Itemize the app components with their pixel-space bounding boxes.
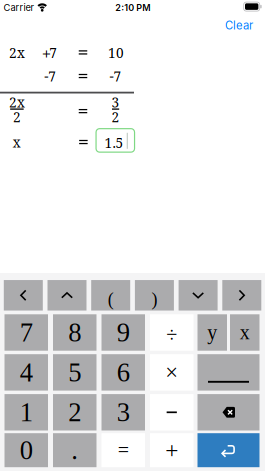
staticText: 0	[20, 435, 33, 465]
staticText: 1.5	[104, 133, 123, 152]
staticText: 10	[108, 43, 124, 62]
button[interactable]: 3	[101, 394, 145, 430]
staticText: x	[240, 321, 250, 343]
button[interactable]: Clear	[217, 17, 261, 33]
staticText: 9	[117, 318, 130, 347]
button[interactable]: 7	[4, 314, 48, 351]
button[interactable]: 0	[4, 433, 48, 467]
staticText: 6	[117, 358, 130, 387]
button[interactable]: Fraction	[197, 354, 259, 391]
button[interactable]: y	[197, 314, 227, 351]
staticText: 4	[20, 358, 33, 387]
button[interactable]: 6	[101, 354, 145, 391]
staticText: .	[71, 435, 78, 465]
button[interactable]: 5	[53, 354, 96, 391]
button[interactable]: +	[150, 433, 193, 467]
staticText: 3	[112, 93, 120, 111]
staticText: 1	[20, 397, 33, 427]
staticText: Clear	[225, 19, 253, 32]
button[interactable]: 2	[53, 394, 96, 430]
staticText: (	[108, 289, 114, 309]
staticText: +	[42, 41, 51, 64]
staticText: Carrier	[3, 2, 34, 13]
staticText: 7	[20, 318, 33, 347]
button[interactable]: 9	[101, 314, 145, 351]
button[interactable]: 8	[53, 314, 96, 351]
staticText: 2	[13, 108, 21, 126]
button[interactable]: ×	[150, 354, 193, 391]
staticText: 2	[112, 108, 120, 126]
staticText: )	[151, 289, 157, 309]
staticText: 8	[68, 318, 81, 347]
staticText: 2x	[9, 93, 25, 111]
button[interactable]: (	[91, 280, 130, 311]
staticText: ×	[165, 360, 178, 385]
button[interactable]: .	[53, 433, 96, 467]
staticText: 5	[68, 358, 81, 387]
button[interactable]: Return	[197, 433, 259, 467]
staticText: ÷	[166, 324, 177, 346]
button[interactable]: x	[230, 314, 259, 351]
staticText: +	[165, 437, 178, 463]
button[interactable]: Move left	[4, 280, 43, 311]
staticText: 7	[49, 43, 57, 62]
button[interactable]: )	[135, 280, 174, 311]
button[interactable]: Move right	[222, 280, 261, 311]
staticText: -7	[109, 67, 121, 85]
button[interactable]: Move up	[47, 280, 86, 311]
button[interactable]: Delete	[197, 394, 259, 430]
button[interactable]: Move down	[179, 280, 218, 311]
staticText: 2x	[9, 43, 25, 62]
button[interactable]: =	[101, 433, 145, 467]
button[interactable]: Minus	[150, 394, 193, 430]
button[interactable]: 1	[4, 394, 48, 430]
staticText: -7	[44, 67, 56, 85]
staticText: 2	[68, 397, 81, 427]
staticText: y	[207, 321, 217, 343]
button[interactable]: 4	[4, 354, 48, 391]
staticText: 2:10 PM	[115, 2, 150, 13]
staticText: =	[118, 439, 129, 461]
staticText: x	[13, 133, 21, 151]
button[interactable]: ÷	[150, 314, 193, 351]
staticText: 3	[117, 397, 130, 427]
